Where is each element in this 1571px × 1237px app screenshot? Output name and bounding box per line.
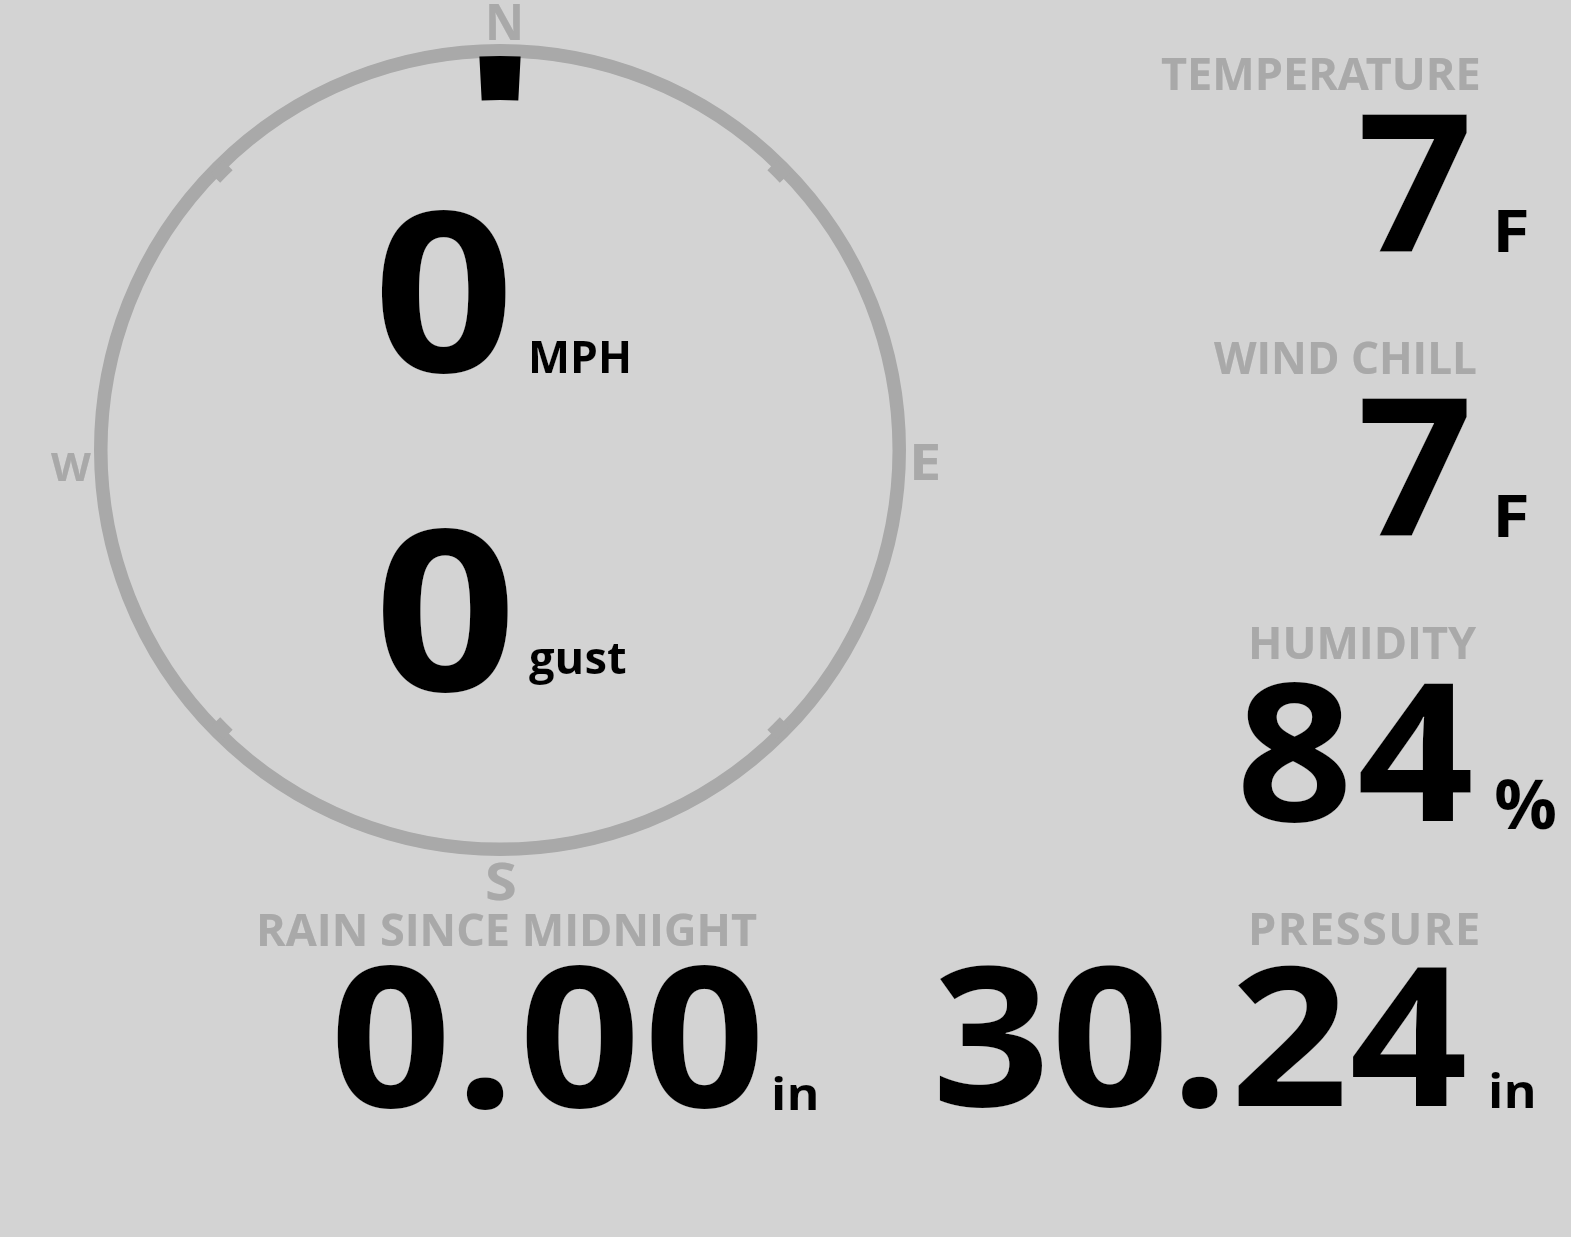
staticText: 7 bbox=[1357, 331, 1474, 592]
staticText: 7 bbox=[1357, 47, 1474, 308]
button[interactable]: Humidity 84 percent bbox=[1150, 608, 1565, 833]
staticText: RAIN SINCE MIDNIGHT bbox=[256, 898, 757, 959]
button[interactable]: Pressure 30.24 in bbox=[920, 893, 1565, 1121]
staticText: TEMPERATURE bbox=[1161, 42, 1481, 103]
staticText: 0.00 bbox=[330, 898, 769, 1165]
button[interactable]: Rain since midnight 0.00 in bbox=[250, 893, 830, 1121]
staticText: 0 bbox=[373, 135, 515, 437]
button[interactable]: Wind chill 7 degrees F bbox=[1150, 325, 1565, 550]
button[interactable]: Temperature 7 degrees F bbox=[1150, 40, 1565, 265]
staticText: HUMIDITY bbox=[1248, 611, 1477, 672]
staticText: F bbox=[1492, 189, 1531, 269]
staticText: F bbox=[1492, 474, 1531, 554]
staticText: 84 bbox=[1236, 616, 1479, 877]
staticText: in bbox=[1488, 1059, 1537, 1122]
staticText: N bbox=[485, 0, 524, 55]
staticText: 0 bbox=[374, 452, 517, 757]
staticText: PRESSURE bbox=[1248, 897, 1482, 958]
staticText: in bbox=[771, 1062, 820, 1123]
button[interactable]: Wind compass: 0 MPH from north, gust 0 bbox=[88, 40, 912, 864]
staticText: S bbox=[485, 844, 517, 915]
staticText: % bbox=[1494, 756, 1558, 849]
staticText: E bbox=[909, 425, 942, 494]
staticText: gust bbox=[529, 627, 627, 687]
staticText: 30.24 bbox=[932, 899, 1469, 1163]
staticText: WIND CHILL bbox=[1214, 327, 1477, 387]
staticText: W bbox=[51, 438, 91, 492]
staticText: MPH bbox=[528, 325, 633, 386]
